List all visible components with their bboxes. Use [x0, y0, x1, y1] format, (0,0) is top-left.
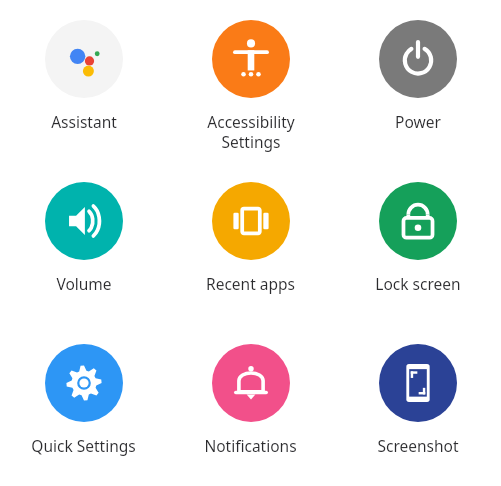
staticText: Screenshot: [377, 435, 459, 456]
staticText: Assistant: [51, 111, 117, 132]
button[interactable]: Accessibility Settings: [167, 0, 334, 162]
button[interactable]: Assistant: [0, 0, 167, 162]
staticText: Recent apps: [206, 273, 295, 294]
button[interactable]: Notifications: [167, 324, 334, 486]
button[interactable]: Lock screen: [334, 162, 501, 324]
staticText: Lock screen: [375, 273, 461, 294]
staticText: Notifications: [204, 435, 297, 456]
button[interactable]: Volume: [0, 162, 167, 324]
button[interactable]: Power: [334, 0, 501, 162]
staticText: Power: [395, 111, 441, 132]
button[interactable]: Quick Settings: [0, 324, 167, 486]
staticText: Accessibility Settings: [207, 111, 295, 152]
staticText: Volume: [56, 273, 112, 294]
staticText: Quick Settings: [31, 435, 136, 456]
button[interactable]: Recent apps: [167, 162, 334, 324]
button[interactable]: Screenshot: [334, 324, 501, 486]
